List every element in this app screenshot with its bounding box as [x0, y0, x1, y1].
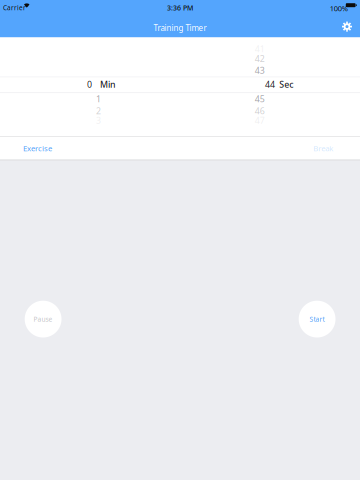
staticText: Break: [313, 143, 333, 153]
staticText: 2: [96, 105, 101, 117]
staticText: 45: [255, 93, 265, 105]
staticText: Exercise: [23, 143, 52, 153]
button[interactable]: Exercise: [23, 137, 69, 160]
staticText: 43: [255, 64, 265, 76]
staticText: Min: [100, 78, 116, 90]
staticText: 1: [96, 93, 101, 105]
staticText: 41: [255, 43, 265, 55]
staticText: 47: [255, 114, 265, 126]
staticText: Pause: [34, 315, 53, 324]
button[interactable]: Break: [287, 137, 333, 160]
staticText: 3:36 PM: [167, 3, 193, 13]
staticText: 42: [255, 52, 265, 64]
staticText: Carrier: [3, 3, 26, 12]
staticText: 100%: [330, 3, 348, 13]
staticText: 3: [96, 114, 101, 126]
staticText: Training Timer: [153, 22, 206, 33]
button[interactable]: Start: [299, 301, 335, 337]
staticText: 44: [265, 78, 275, 90]
staticText: Sec: [279, 78, 293, 90]
staticText: 0: [87, 78, 92, 90]
staticText: Start: [310, 315, 325, 324]
staticText: 46: [255, 105, 265, 117]
button[interactable]: Pause: [25, 301, 61, 337]
button[interactable]: Settings: [335, 16, 359, 38]
